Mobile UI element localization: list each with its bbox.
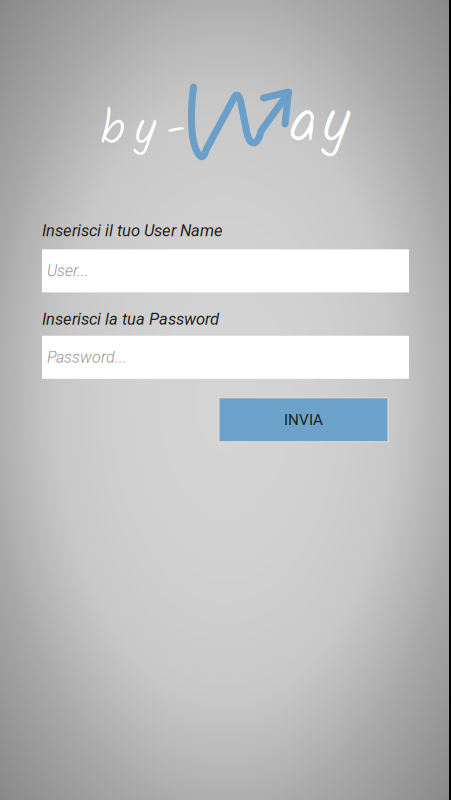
button[interactable]: INVIA xyxy=(219,398,388,442)
button[interactable]: User... xyxy=(42,249,409,292)
staticText: Inserisci la tua Password xyxy=(42,309,219,329)
staticText: ay xyxy=(290,76,349,174)
button[interactable]: Password... xyxy=(42,336,409,379)
staticText: INVIA xyxy=(284,411,323,429)
staticText: by- xyxy=(100,93,185,169)
staticText: Password... xyxy=(47,348,127,367)
staticText: User... xyxy=(47,261,89,280)
staticText: Inserisci il tuo User Name xyxy=(42,221,223,240)
